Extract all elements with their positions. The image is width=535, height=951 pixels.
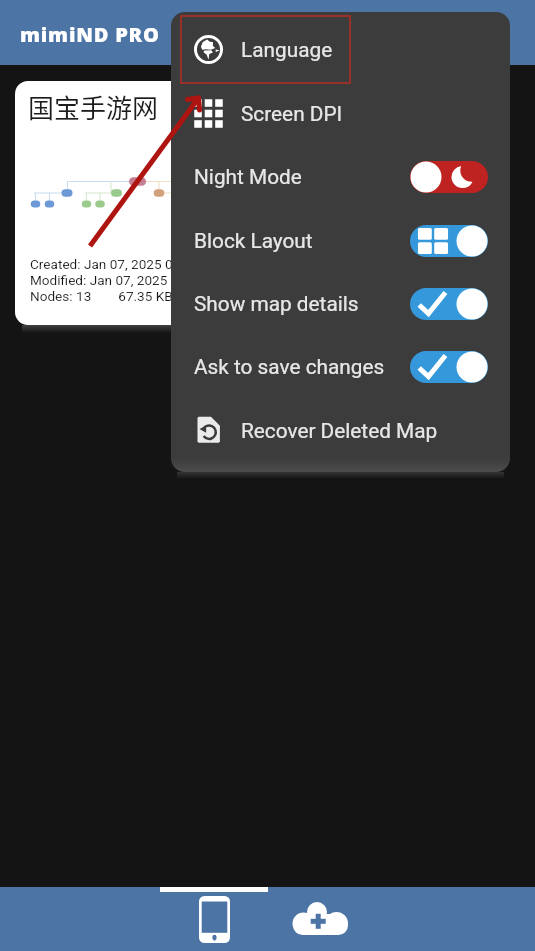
staticText: Screen DPI <box>241 102 343 126</box>
staticText: Night Mode <box>194 165 302 189</box>
button[interactable]: 国宝手游网 <box>15 81 345 325</box>
staticText: Recover Deleted Map <box>241 419 438 443</box>
staticText: mimiND PRO <box>20 21 160 48</box>
button[interactable]: Show map details <box>171 272 510 335</box>
staticText: Show map details <box>194 292 359 316</box>
button[interactable]: Language <box>171 18 510 81</box>
button[interactable]: Block Layout <box>171 209 510 272</box>
button[interactable]: Night Mode <box>171 145 510 208</box>
button[interactable]: My maps <box>160 887 268 951</box>
button[interactable]: Ask to save changes <box>171 335 510 398</box>
button[interactable]: Recover Deleted Map <box>171 399 510 462</box>
staticText: Language <box>241 38 333 62</box>
staticText: Ask to save changes <box>194 355 385 379</box>
staticText: Block Layout <box>194 229 313 253</box>
button[interactable]: Screen DPI <box>171 82 510 145</box>
button[interactable]: Cloud maps <box>268 887 376 951</box>
staticText: Nodes: 13 67.35 KB <box>30 288 173 304</box>
staticText: Created: Jan 07, 2025 08:43 <box>30 256 199 272</box>
staticText: Modified: Jan 07, 2025 08:51 <box>30 272 205 288</box>
staticText: 国宝手游网 <box>28 88 159 126</box>
